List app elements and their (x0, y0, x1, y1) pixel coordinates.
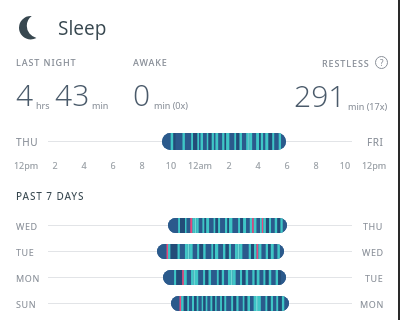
staticText: 6 (99, 159, 127, 171)
staticText: TUE (365, 272, 384, 284)
other: Sleep (16, 13, 46, 43)
staticText: TUE (16, 246, 35, 258)
button[interactable]: RESTLESS (254, 56, 388, 116)
button[interactable]: What is restless? (375, 56, 388, 69)
staticText: 10 (157, 159, 185, 171)
staticText: min (92, 99, 109, 111)
staticText: min (0x) (154, 99, 188, 111)
staticText: 291 (294, 75, 346, 116)
staticText: ? (380, 57, 384, 68)
button[interactable]: AWAKE (133, 56, 254, 115)
button[interactable] (162, 133, 286, 150)
staticText: min (17x) (348, 100, 388, 112)
button[interactable] (171, 296, 289, 311)
staticText: 4 (70, 159, 98, 171)
button[interactable]: Sleep (0, 0, 400, 56)
staticText: PAST 7 DAYS (16, 189, 85, 203)
staticText: 12am (186, 159, 214, 171)
staticText: Sleep (58, 15, 107, 41)
staticText: THU (363, 220, 384, 232)
staticText: MON (16, 272, 40, 284)
staticText: THU (16, 135, 39, 149)
staticText: 4 (244, 159, 272, 171)
staticText: AWAKE (133, 56, 168, 68)
staticText: WED (362, 246, 384, 258)
button[interactable] (168, 218, 287, 233)
staticText: 2 (41, 159, 69, 171)
staticText: LAST NIGHT (16, 56, 77, 68)
staticText: 8 (302, 159, 330, 171)
staticText: hrs (36, 99, 50, 111)
staticText: 4 (16, 74, 34, 115)
button[interactable] (163, 270, 286, 285)
staticText: WED (16, 220, 38, 232)
staticText: 6 (273, 159, 301, 171)
staticText: SUN (16, 298, 37, 310)
staticText: 10 (331, 159, 359, 171)
staticText: 8 (128, 159, 156, 171)
staticText: 2 (215, 159, 243, 171)
staticText: 0 (133, 74, 151, 115)
staticText: 12pm (360, 159, 388, 171)
staticText: RESTLESS (322, 57, 370, 69)
staticText: 43 (55, 74, 90, 115)
staticText: FRI (367, 135, 384, 149)
button[interactable] (157, 244, 284, 259)
button[interactable]: LAST NIGHT (16, 56, 133, 115)
staticText: 12pm (12, 159, 40, 171)
staticText: MON (360, 298, 384, 310)
